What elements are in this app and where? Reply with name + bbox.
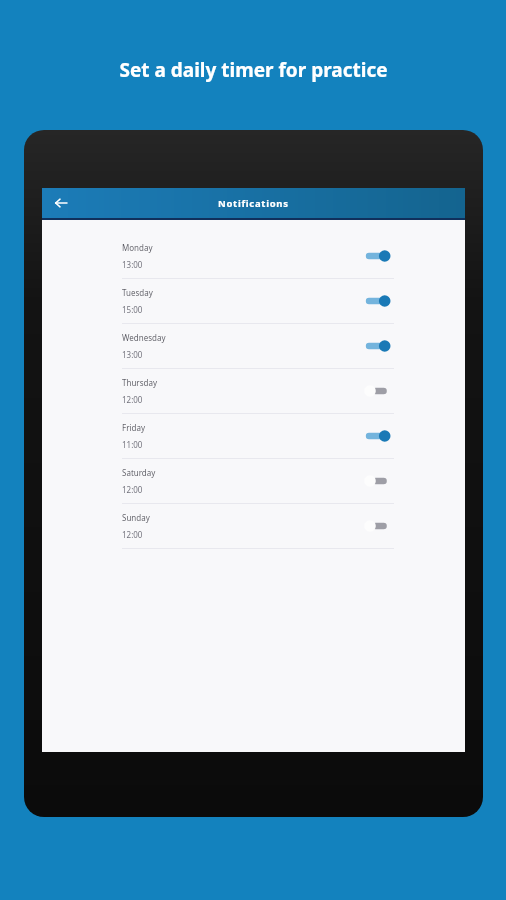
button[interactable]: Friday bbox=[42, 414, 465, 459]
staticText: Sunday bbox=[122, 512, 150, 523]
staticText: Tuesday bbox=[122, 287, 153, 298]
staticText: Saturday bbox=[122, 467, 156, 478]
button[interactable]: Alarm on bbox=[364, 336, 394, 356]
staticText: 12:00 bbox=[122, 394, 143, 405]
staticText: 12:00 bbox=[122, 484, 143, 495]
staticText: Monday bbox=[122, 242, 153, 253]
button[interactable]: Alarm off bbox=[364, 381, 394, 401]
button[interactable]: Alarm off bbox=[364, 471, 394, 491]
staticText: Friday bbox=[122, 422, 146, 433]
staticText: Set a daily timer for practice bbox=[119, 57, 388, 83]
staticText: 13:00 bbox=[122, 259, 143, 270]
button[interactable]: Alarm on bbox=[364, 291, 394, 311]
button[interactable]: Alarm off bbox=[364, 516, 394, 536]
button[interactable]: Monday bbox=[42, 234, 465, 279]
staticText: Thursday bbox=[122, 377, 157, 388]
staticText: Notifications bbox=[218, 197, 289, 210]
button[interactable]: Sunday bbox=[42, 504, 465, 549]
button[interactable]: Tuesday bbox=[42, 279, 465, 324]
staticText: 13:00 bbox=[122, 349, 143, 360]
staticText: 15:00 bbox=[122, 304, 143, 315]
staticText: Wednesday bbox=[122, 332, 166, 343]
button[interactable]: Alarm on bbox=[364, 246, 394, 266]
staticText: 12:00 bbox=[122, 529, 143, 540]
button[interactable]: Back bbox=[48, 190, 74, 216]
button[interactable]: Wednesday bbox=[42, 324, 465, 369]
button[interactable]: Alarm on bbox=[364, 426, 394, 446]
button[interactable]: Thursday bbox=[42, 369, 465, 414]
staticText: 11:00 bbox=[122, 439, 143, 450]
button[interactable]: Saturday bbox=[42, 459, 465, 504]
